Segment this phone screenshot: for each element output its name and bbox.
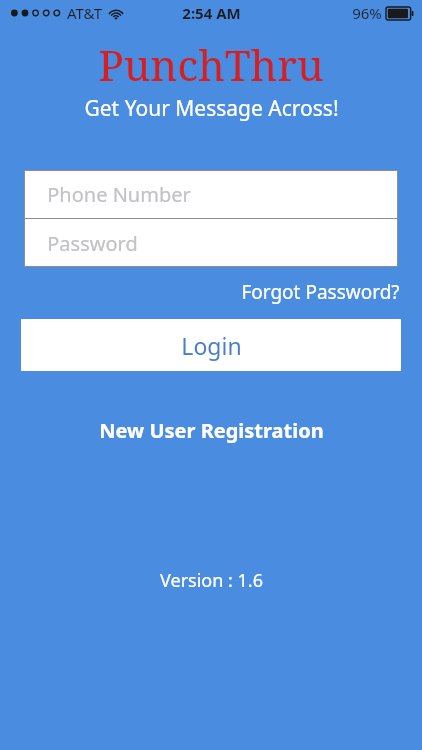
- button[interactable]: New User Registration: [89, 413, 334, 448]
- staticText: Login: [181, 330, 242, 361]
- button[interactable]: Password: [24, 219, 398, 267]
- button[interactable]: Forgot Password?: [239, 277, 402, 307]
- staticText: New User Registration: [99, 417, 324, 444]
- staticText: Phone Number: [47, 181, 191, 208]
- button[interactable]: Phone Number: [24, 170, 398, 218]
- staticText: PunchThru: [98, 36, 324, 88]
- staticText: Get Your Message Across!: [84, 94, 339, 122]
- staticText: 2:54 AM: [182, 3, 241, 23]
- staticText: Version : 1.6: [160, 568, 263, 593]
- staticText: AT&T: [67, 3, 102, 23]
- staticText: 96%: [352, 3, 382, 23]
- staticText: Password: [47, 230, 138, 257]
- staticText: Forgot Password?: [241, 279, 400, 305]
- button[interactable]: Login: [21, 319, 401, 371]
